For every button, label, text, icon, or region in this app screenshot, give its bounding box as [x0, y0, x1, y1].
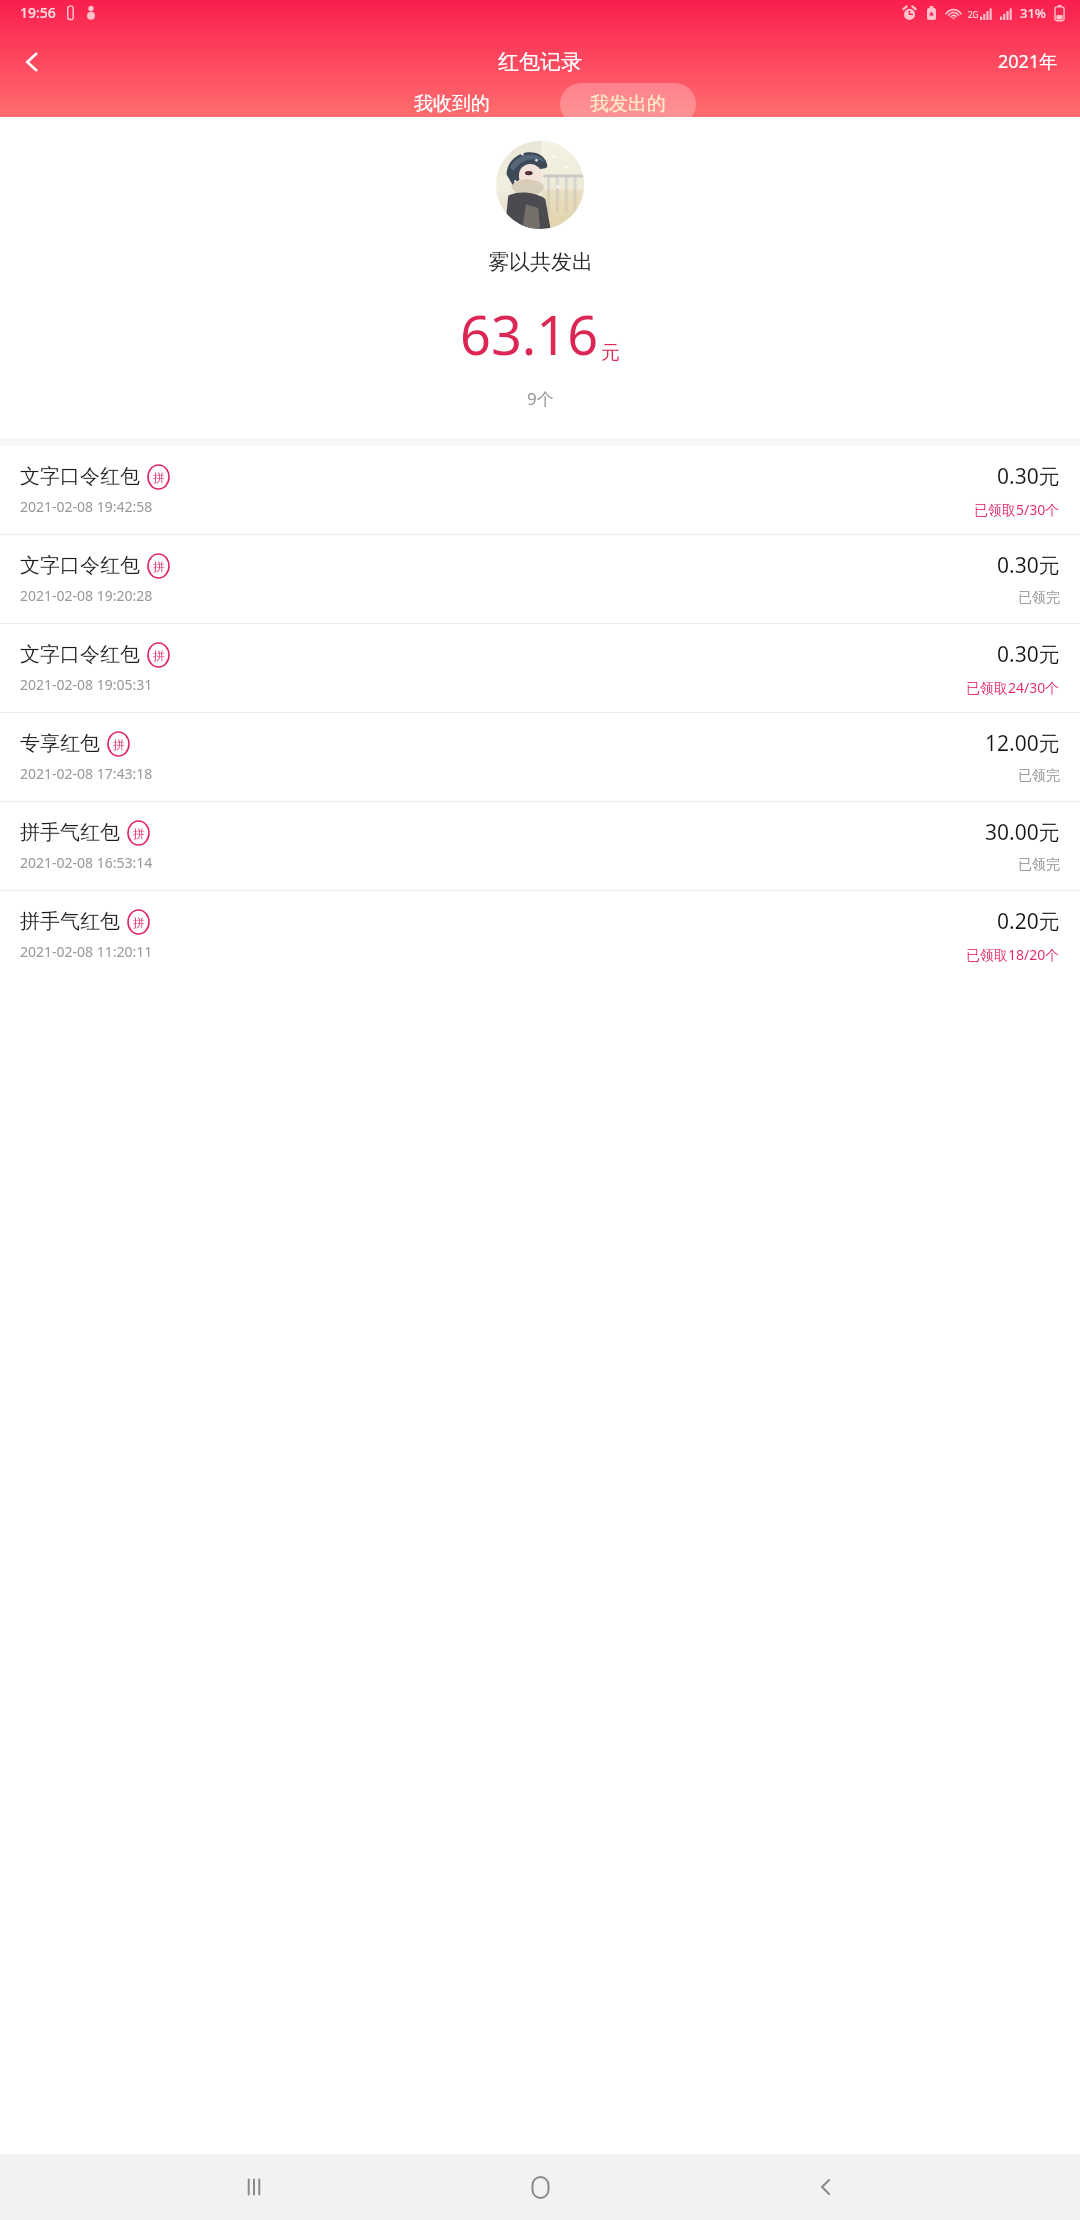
button[interactable]: 我收到的 [384, 83, 520, 125]
button[interactable]: Back [8, 38, 56, 86]
staticText: 9个 [527, 387, 554, 410]
button[interactable]: 文字口令红包 [0, 535, 1080, 623]
staticText: 拼 [113, 737, 125, 752]
staticText: 19:56 [20, 3, 56, 22]
staticText: 拼 [153, 648, 165, 663]
staticText: 2G [968, 9, 979, 20]
staticText: 2021-02-08 17:43:18 [20, 764, 153, 783]
button[interactable]: 拼手气红包 [0, 891, 1080, 979]
staticText: 拼 [153, 559, 165, 574]
staticText: 已领完 [1018, 589, 1060, 607]
staticText: 拼手气红包 [20, 909, 120, 934]
staticText: 我发出的 [590, 92, 666, 116]
staticText: 拼 [133, 826, 145, 841]
staticText: 已领取5/30个 [974, 500, 1060, 519]
button[interactable]: 文字口令红包 [0, 624, 1080, 712]
staticText: 文字口令红包 [20, 464, 140, 489]
staticText: 元 [601, 341, 620, 365]
staticText: 2021-02-08 19:20:28 [20, 586, 153, 605]
staticText: 63.16 [460, 297, 599, 371]
staticText: 0.20元 [997, 907, 1060, 936]
staticText: 我收到的 [414, 92, 490, 116]
button[interactable] [496, 141, 584, 229]
staticText: 拼 [133, 915, 145, 930]
button[interactable]: Recents [222, 2155, 286, 2219]
staticText: 2021-02-08 19:42:58 [20, 497, 153, 516]
staticText: 0.30元 [997, 462, 1060, 491]
staticText: 文字口令红包 [20, 642, 140, 667]
staticText: 2021-02-08 19:05:31 [20, 675, 153, 694]
staticText: 已领完 [1018, 856, 1060, 874]
button[interactable]: 拼手气红包 [0, 802, 1080, 890]
button[interactable]: Home [508, 2155, 572, 2219]
button[interactable]: 我发出的 [560, 83, 696, 125]
staticText: 2021年 [998, 49, 1058, 74]
staticText: 已领取18/20个 [966, 945, 1060, 964]
staticText: 已领完 [1018, 767, 1060, 785]
staticText: 已领取24/30个 [966, 678, 1060, 697]
button[interactable]: 2021年 [992, 43, 1064, 80]
button[interactable]: Back [794, 2155, 858, 2219]
staticText: 专享红包 [20, 731, 100, 756]
button[interactable]: 专享红包 [0, 713, 1080, 801]
staticText: 雾以共发出 [488, 249, 593, 275]
staticText: 0.30元 [997, 640, 1060, 669]
staticText: 12.00元 [985, 729, 1060, 758]
staticText: 30.00元 [985, 818, 1060, 847]
staticText: 0.30元 [997, 551, 1060, 580]
staticText: 拼 [153, 470, 165, 485]
staticText: 2021-02-08 16:53:14 [20, 853, 153, 872]
staticText: 文字口令红包 [20, 553, 140, 578]
staticText: 拼手气红包 [20, 820, 120, 845]
staticText: 2021-02-08 11:20:11 [20, 942, 153, 961]
button[interactable]: 文字口令红包 [0, 446, 1080, 534]
staticText: 红包记录 [498, 49, 582, 75]
staticText: 31% [1020, 4, 1046, 22]
